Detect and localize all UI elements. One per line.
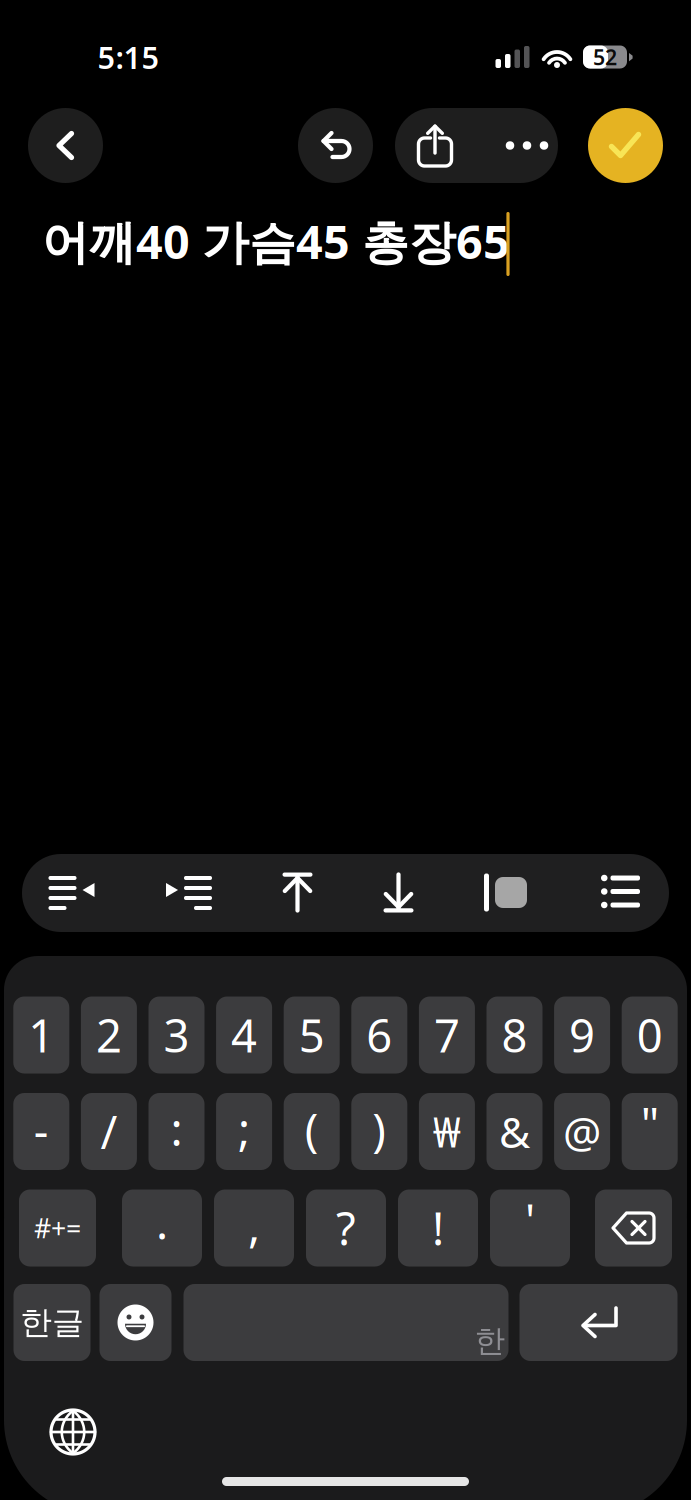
button[interactable]: Move to top (247, 853, 347, 931)
button[interactable]: ) (351, 1093, 407, 1170)
button[interactable]: Delete (595, 1189, 672, 1266)
staticText: ₩ (433, 1104, 461, 1159)
button[interactable]: Bulleted list (570, 852, 670, 930)
button[interactable]: Decrease indent (21, 854, 121, 932)
button[interactable]: , (214, 1189, 294, 1266)
staticText: 52 (593, 43, 617, 71)
staticText: @ (563, 1103, 601, 1160)
button[interactable]: 2 (81, 996, 137, 1073)
button[interactable]: Space (183, 1284, 508, 1361)
button[interactable]: ( (284, 1093, 340, 1170)
button[interactable]: Return (519, 1284, 677, 1361)
staticText: 2 (96, 1005, 122, 1065)
button[interactable]: 8 (486, 996, 542, 1073)
staticText: 9 (569, 1005, 595, 1065)
button[interactable]: 1 (13, 996, 69, 1073)
staticText: 3 (163, 1005, 189, 1065)
staticText: ' (525, 1190, 535, 1250)
staticText: , (248, 1195, 260, 1255)
staticText: & (499, 1103, 530, 1160)
button[interactable]: : (148, 1093, 204, 1170)
button[interactable]: Back (28, 108, 103, 183)
button[interactable]: Move to bottom (348, 853, 448, 931)
staticText: 6 (366, 1005, 392, 1065)
button[interactable]: ' (490, 1189, 570, 1266)
staticText: 7 (434, 1005, 460, 1065)
button[interactable]: ! (398, 1189, 478, 1266)
button[interactable]: Text colour (455, 853, 555, 931)
button[interactable]: ; (216, 1093, 272, 1170)
staticText: 한글 (20, 1303, 84, 1342)
button[interactable]: . (122, 1189, 202, 1266)
staticText: : (170, 1098, 182, 1159)
button[interactable]: 3 (148, 996, 204, 1073)
staticText: ) (372, 1099, 386, 1160)
staticText: 1 (28, 1005, 54, 1065)
button[interactable]: 5 (284, 996, 340, 1073)
staticText: . (156, 1192, 168, 1252)
staticText: #+= (34, 1210, 81, 1246)
button[interactable]: - (13, 1093, 69, 1170)
staticText: ! (432, 1198, 444, 1258)
staticText: 한 (474, 1322, 505, 1360)
button[interactable]: More (485, 108, 568, 183)
staticText: - (34, 1099, 49, 1160)
button[interactable]: ₩ (419, 1093, 475, 1170)
staticText: ; (238, 1098, 250, 1159)
staticText: 8 (501, 1005, 527, 1065)
button[interactable]: 6 (351, 996, 407, 1073)
button[interactable]: & (486, 1093, 542, 1170)
staticText: 어깨40 가슴45 총장65 (42, 210, 510, 272)
button[interactable]: 7 (419, 996, 475, 1073)
staticText: " (641, 1093, 659, 1154)
button[interactable]: / (81, 1093, 137, 1170)
staticText: 5:15 (97, 37, 159, 77)
button[interactable]: Increase indent (139, 854, 239, 932)
button[interactable]: 4 (216, 996, 272, 1073)
button[interactable]: @ (554, 1093, 610, 1170)
button[interactable]: ? (306, 1189, 386, 1266)
button[interactable]: #+= (19, 1189, 96, 1266)
staticText: 5 (299, 1005, 325, 1065)
button[interactable]: " (622, 1093, 678, 1170)
button[interactable]: Share (395, 108, 475, 183)
staticText: 4 (231, 1005, 257, 1065)
staticText: / (100, 1101, 117, 1162)
staticText: ( (305, 1099, 319, 1160)
button[interactable]: 한글 (13, 1284, 90, 1361)
staticText: 0 (637, 1005, 663, 1065)
button[interactable]: Emoji (99, 1284, 171, 1361)
button[interactable]: 0 (622, 996, 678, 1073)
button[interactable]: Next keyboard (43, 1404, 103, 1460)
button[interactable]: Done (588, 108, 663, 183)
staticText: ? (336, 1198, 356, 1258)
button[interactable]: 9 (554, 996, 610, 1073)
button[interactable]: Undo (298, 108, 373, 183)
